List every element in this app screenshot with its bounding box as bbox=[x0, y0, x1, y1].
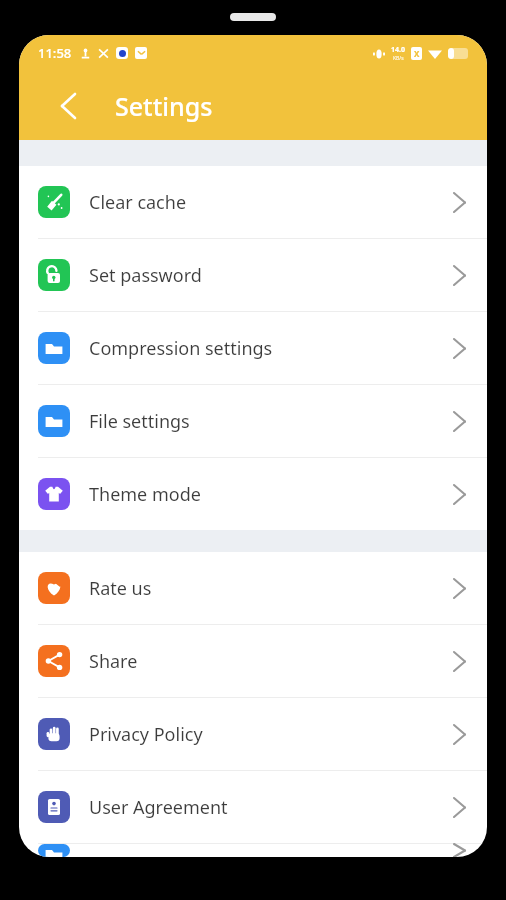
staticText: File settings bbox=[89, 409, 454, 434]
staticText: KB/s bbox=[393, 55, 404, 62]
button[interactable]: User Agreement bbox=[19, 771, 487, 843]
button[interactable]: Privacy Policy bbox=[19, 698, 487, 770]
staticText: Clear cache bbox=[89, 190, 454, 215]
staticText: Theme mode bbox=[89, 482, 454, 507]
staticText: Rate us bbox=[89, 576, 454, 601]
staticText: Compression settings bbox=[89, 336, 454, 361]
button[interactable]: Set password bbox=[19, 239, 487, 311]
staticText: Share bbox=[89, 649, 454, 674]
button[interactable]: Rate us bbox=[19, 552, 487, 624]
button[interactable]: Share bbox=[19, 625, 487, 697]
button[interactable]: Compression settings bbox=[19, 312, 487, 384]
button[interactable]: Theme mode bbox=[19, 458, 487, 530]
staticText: 14.0 bbox=[391, 45, 405, 55]
staticText: Privacy Policy bbox=[89, 722, 454, 747]
button[interactable]: File settings bbox=[19, 385, 487, 457]
button[interactable]: Clear cache bbox=[19, 166, 487, 238]
staticText: Set password bbox=[89, 263, 454, 288]
button[interactable] bbox=[19, 844, 487, 857]
staticText: 11:58 bbox=[38, 44, 72, 62]
staticText: Settings bbox=[115, 89, 213, 123]
staticText: X bbox=[414, 48, 420, 59]
staticText: User Agreement bbox=[89, 795, 454, 820]
button[interactable]: Back bbox=[51, 89, 85, 123]
